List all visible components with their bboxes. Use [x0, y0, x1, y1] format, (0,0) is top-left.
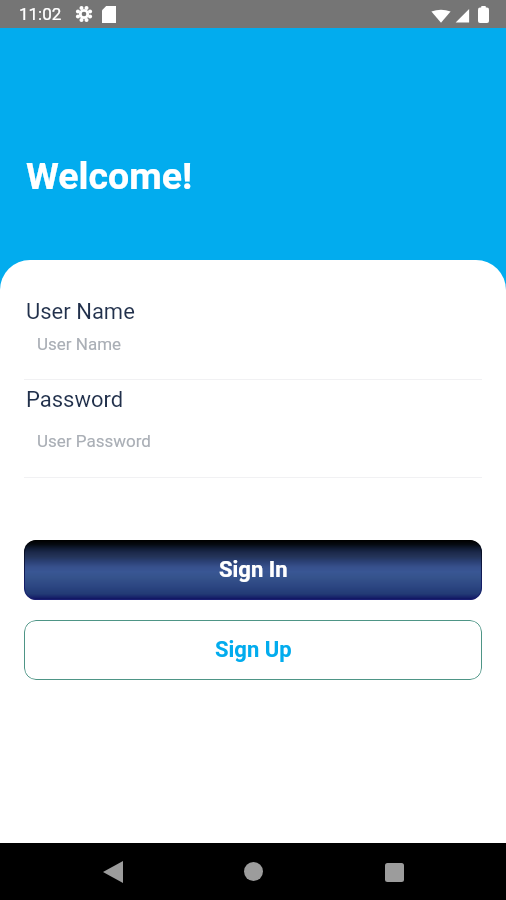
staticText: User Password: [37, 431, 151, 451]
staticText: Sign Up: [215, 637, 292, 663]
staticText: Password: [26, 387, 124, 413]
staticText: 11:02: [19, 4, 62, 24]
button[interactable]: Sign Up: [24, 620, 482, 680]
button[interactable]: Sign In: [24, 540, 482, 600]
staticText: Sign In: [219, 557, 288, 583]
button[interactable]: Recent apps: [370, 848, 418, 896]
button[interactable]: Back: [89, 848, 137, 896]
button[interactable]: Home: [229, 847, 277, 895]
staticText: Welcome!: [26, 154, 193, 198]
staticText: User Name: [37, 334, 122, 354]
staticText: User Name: [26, 299, 135, 325]
